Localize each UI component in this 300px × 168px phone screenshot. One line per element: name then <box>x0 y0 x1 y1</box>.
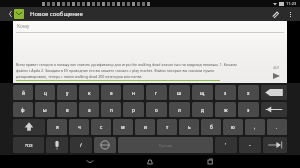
button[interactable]: ь <box>179 119 199 135</box>
staticText: Кому <box>17 23 30 30</box>
staticText: е <box>110 90 113 96</box>
button[interactable]: е <box>101 85 121 100</box>
staticText: ы <box>43 107 47 113</box>
button[interactable]: в <box>57 102 77 117</box>
button[interactable]: н <box>123 85 144 100</box>
staticText: в <box>66 107 69 113</box>
staticText: ц <box>44 90 47 96</box>
button[interactable]: м <box>113 119 133 135</box>
button[interactable]: Enter <box>261 102 287 117</box>
button[interactable]: ф <box>13 102 33 117</box>
staticText: й <box>22 90 25 96</box>
staticText: и <box>144 124 147 130</box>
button[interactable]: щ <box>192 85 213 100</box>
button[interactable]: ш <box>169 85 190 100</box>
staticText: х <box>247 90 250 96</box>
button[interactable]: л <box>169 102 190 117</box>
staticText: я <box>56 124 59 130</box>
staticText: т <box>166 124 169 130</box>
button[interactable]: Attach <box>267 7 283 21</box>
button[interactable]: у <box>57 85 77 100</box>
staticText: разархивировать, теперь с папке walking … <box>16 74 142 79</box>
button[interactable]: Next field <box>263 137 287 153</box>
staticText: , <box>254 124 256 130</box>
button[interactable]: Voice input <box>46 137 68 153</box>
staticText: / <box>80 142 82 148</box>
button[interactable]: х <box>238 85 259 100</box>
staticText: . <box>276 124 278 130</box>
button[interactable]: Send <box>269 71 283 81</box>
button[interactable]: ч <box>69 119 89 135</box>
button[interactable]: о <box>146 102 167 117</box>
button[interactable]: - <box>239 137 261 153</box>
button[interactable]: и <box>135 119 155 135</box>
staticText: г <box>155 90 158 96</box>
button[interactable]: с <box>91 119 111 135</box>
staticText: с <box>100 124 103 130</box>
button[interactable]: а <box>79 102 99 117</box>
button[interactable]: Backspace <box>261 85 287 100</box>
button[interactable]: ы <box>35 102 55 117</box>
button[interactable]: . <box>267 119 287 135</box>
button[interactable]: Recents <box>193 155 227 168</box>
button[interactable]: Home <box>133 155 167 168</box>
button[interactable]: г <box>146 85 167 100</box>
button[interactable]: ' <box>215 137 237 153</box>
button[interactable]: й <box>13 85 33 100</box>
staticText: ю <box>231 124 235 130</box>
button[interactable]: ц <box>35 85 55 100</box>
button[interactable]: , <box>245 119 265 135</box>
button[interactable]: Back <box>73 155 107 168</box>
button[interactable]: б <box>201 119 221 135</box>
staticText: Всем привет сегодня я покажу как ставить… <box>16 62 237 67</box>
button[interactable]: Всем привет сегодня я покажу как ставить… <box>16 62 265 81</box>
staticText: ь <box>188 124 191 130</box>
staticText: Новое сообщение <box>30 10 83 18</box>
button[interactable]: р <box>123 102 144 117</box>
staticText: к <box>88 90 91 96</box>
button[interactable]: я <box>47 119 67 135</box>
staticText: л <box>178 107 181 113</box>
staticText: у <box>66 90 69 96</box>
staticText: д <box>201 107 204 113</box>
staticText: щ <box>200 90 205 96</box>
button[interactable]: ?123 <box>13 137 44 153</box>
staticText: - <box>249 142 251 148</box>
button[interactable]: Up <box>6 7 26 21</box>
button[interactable]: к <box>79 85 99 100</box>
staticText: м <box>121 124 125 130</box>
staticText: 11:23 <box>286 1 297 6</box>
button[interactable]: ю <box>223 119 243 135</box>
button[interactable]: Language <box>94 137 116 153</box>
button[interactable]: Кому <box>13 21 287 32</box>
staticText: 46/1 <box>273 66 280 70</box>
button[interactable]: д <box>192 102 213 117</box>
staticText: п <box>110 107 113 113</box>
staticText: ж <box>224 107 228 113</box>
staticText: р <box>132 107 135 113</box>
button[interactable]: / <box>70 137 92 153</box>
staticText: Русский <box>159 143 172 148</box>
staticText: н <box>132 90 135 96</box>
button[interactable]: э <box>238 102 259 117</box>
staticText: ' <box>225 142 227 148</box>
staticText: о <box>155 107 158 113</box>
button[interactable]: т <box>157 119 177 135</box>
staticText: з <box>224 90 227 96</box>
staticText: ш <box>177 90 182 96</box>
button[interactable]: з <box>215 85 236 100</box>
button[interactable]: ж <box>215 102 236 117</box>
button[interactable]: п <box>101 102 121 117</box>
staticText: файлы с Apda 2. Заходим в ES проводник е… <box>16 68 215 73</box>
staticText: э <box>247 107 250 113</box>
staticText: ч <box>78 124 81 130</box>
button[interactable]: Shift <box>13 119 45 135</box>
button[interactable]: More options <box>283 7 297 21</box>
staticText: б <box>210 124 213 130</box>
staticText: ?123 <box>25 143 33 148</box>
staticText: а <box>88 107 91 113</box>
staticText: ф <box>21 107 25 113</box>
